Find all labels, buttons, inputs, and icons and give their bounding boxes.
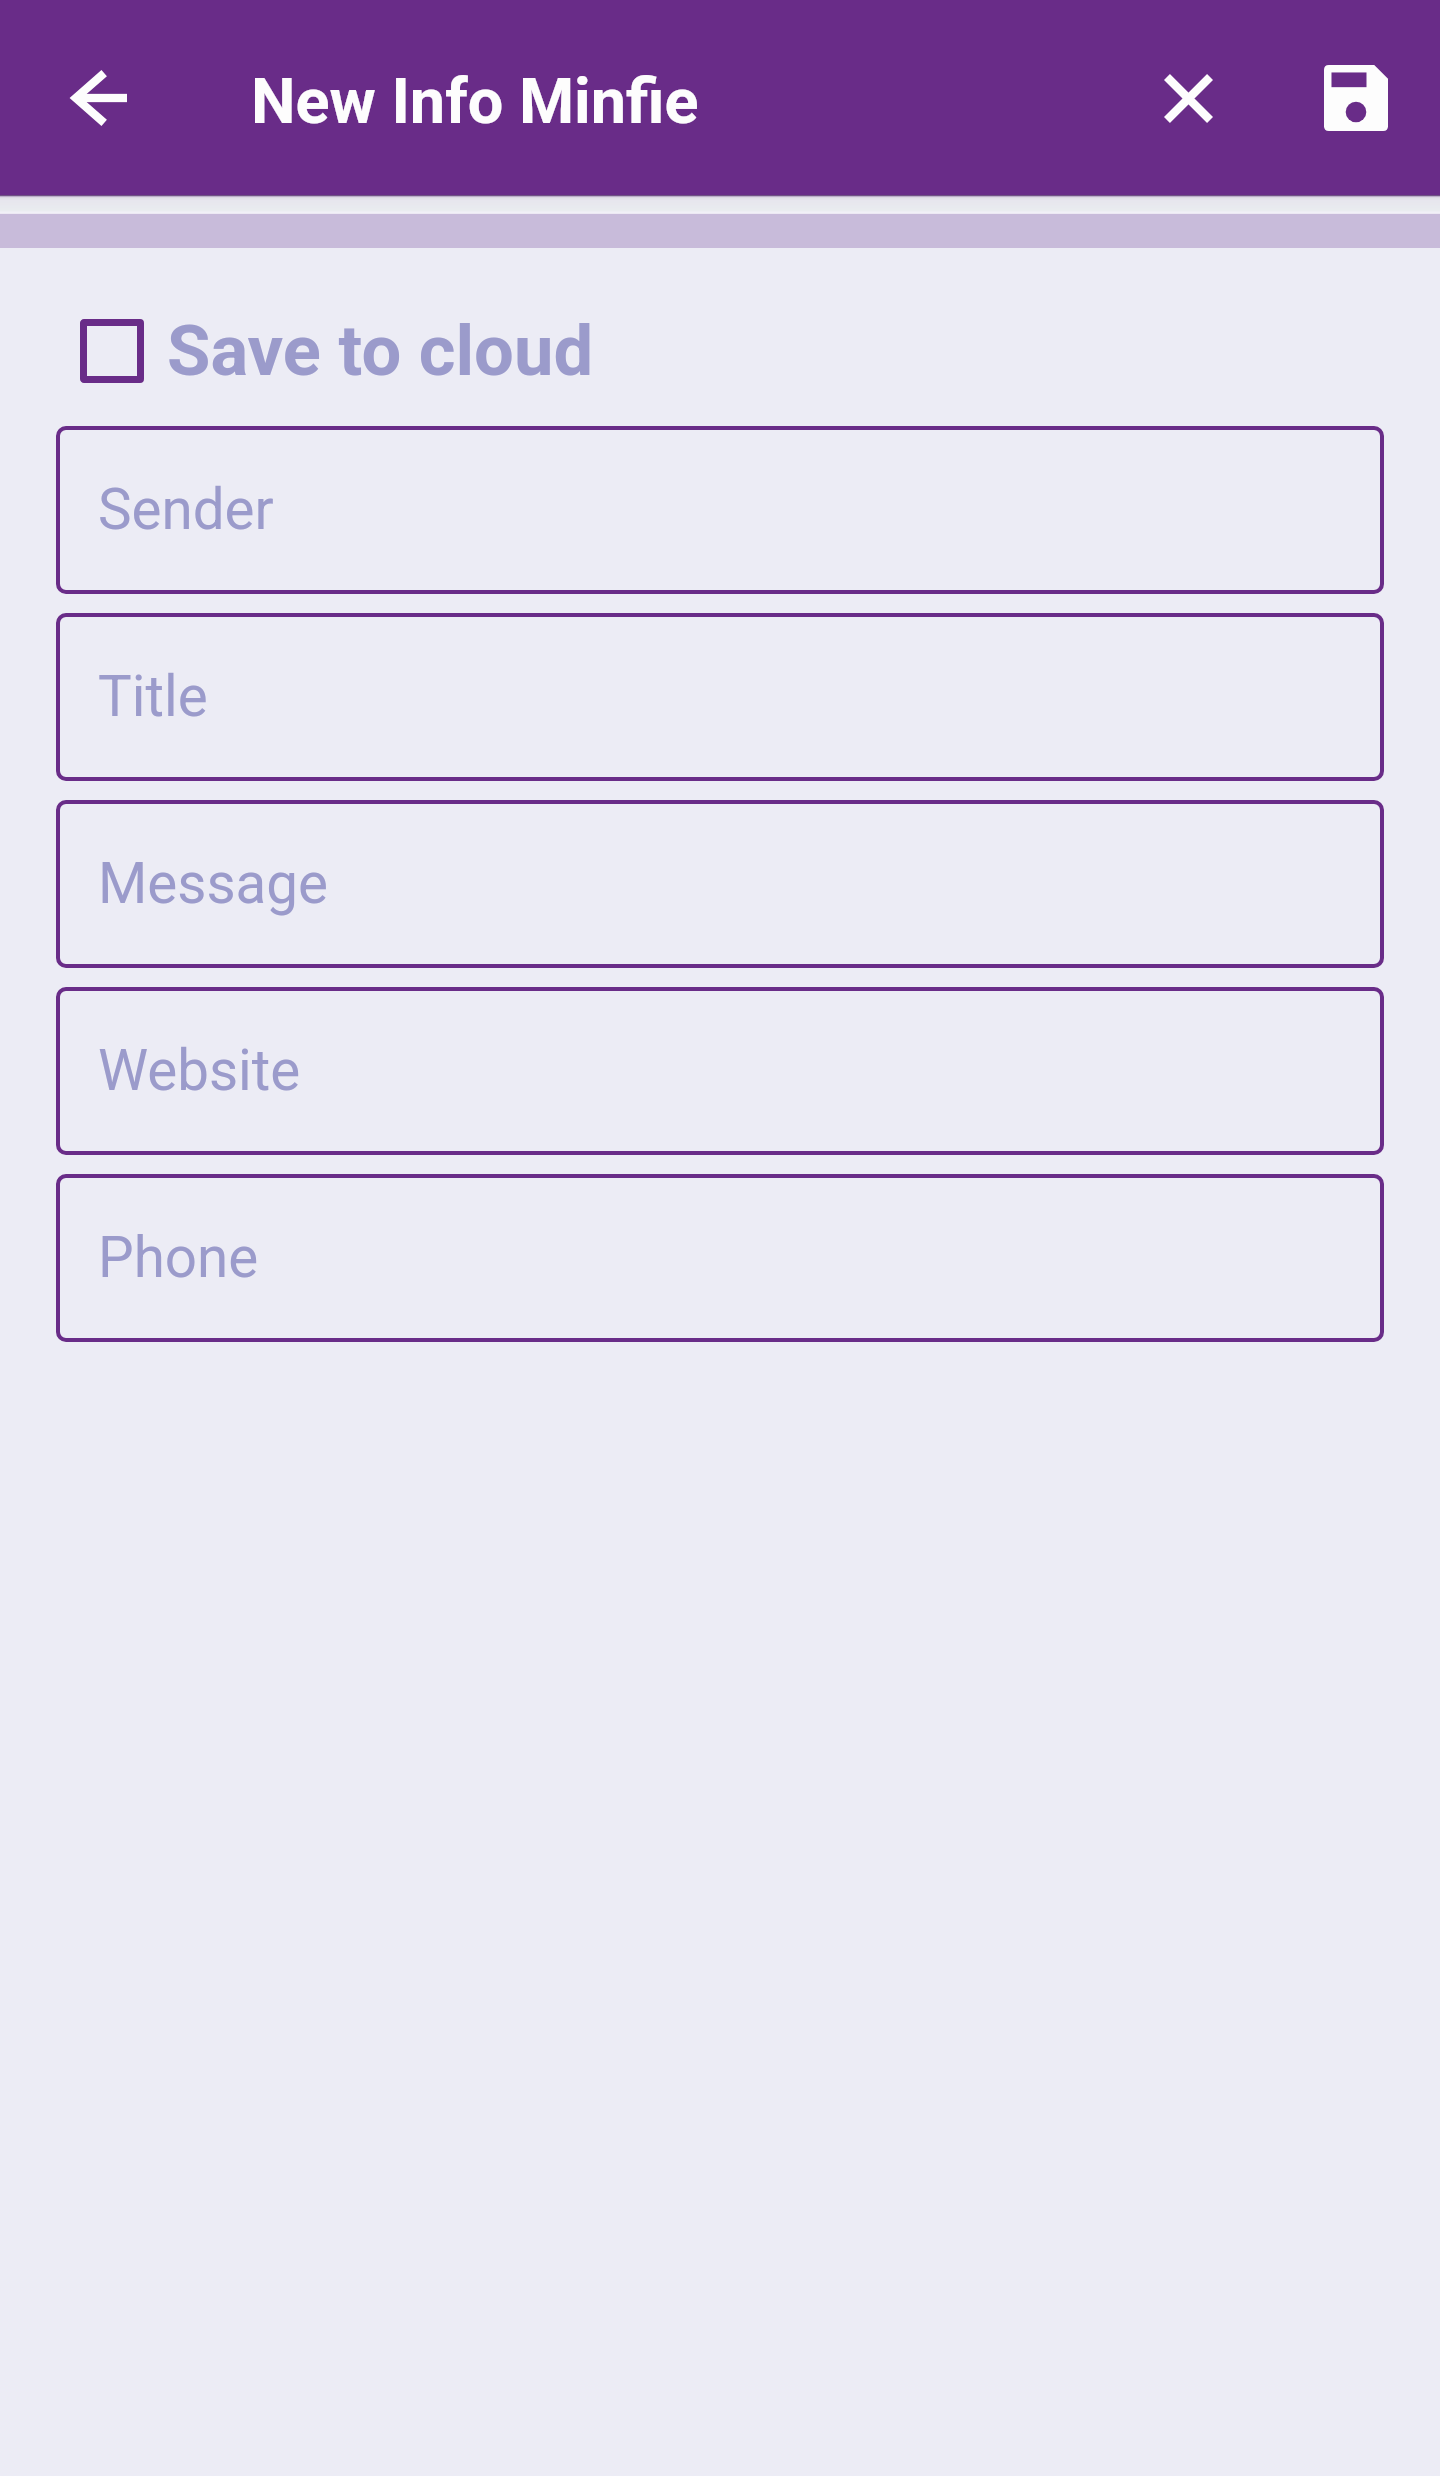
- button[interactable]: Sender: [56, 426, 1384, 594]
- staticText: Message: [98, 851, 329, 917]
- button[interactable]: Title: [56, 613, 1384, 781]
- button[interactable]: Close: [1143, 53, 1233, 143]
- staticText: Website: [98, 1038, 301, 1104]
- button[interactable]: Save: [1304, 46, 1408, 150]
- button[interactable]: Save to cloud: [80, 300, 571, 402]
- button[interactable]: Website: [56, 987, 1384, 1155]
- button[interactable]: Phone: [56, 1174, 1384, 1342]
- button[interactable]: Message: [56, 800, 1384, 968]
- staticText: Sender: [98, 477, 274, 543]
- staticText: New Info Minfie: [251, 65, 699, 139]
- staticText: Title: [98, 664, 208, 730]
- staticText: Save to cloud: [167, 310, 594, 393]
- button[interactable]: Back: [49, 58, 147, 138]
- staticText: Phone: [98, 1225, 259, 1291]
